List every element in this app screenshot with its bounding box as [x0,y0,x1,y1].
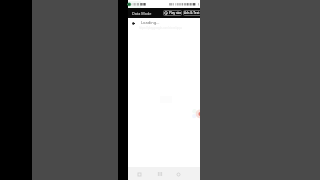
staticText: Loading… [141,20,160,25]
button[interactable]: Home [155,169,165,179]
staticText: Data Mode [132,11,152,16]
button[interactable]: Recents [134,169,144,179]
staticText: Play store [169,11,181,15]
staticText: https://play.google.com/store/apps [139,26,183,30]
button[interactable]: Ads & Test acc [183,10,207,16]
staticText: Ads & Test acc [184,11,205,15]
button[interactable]: Back [173,169,183,179]
button[interactable]: Play store [163,10,182,16]
button[interactable]: Back [130,20,137,27]
